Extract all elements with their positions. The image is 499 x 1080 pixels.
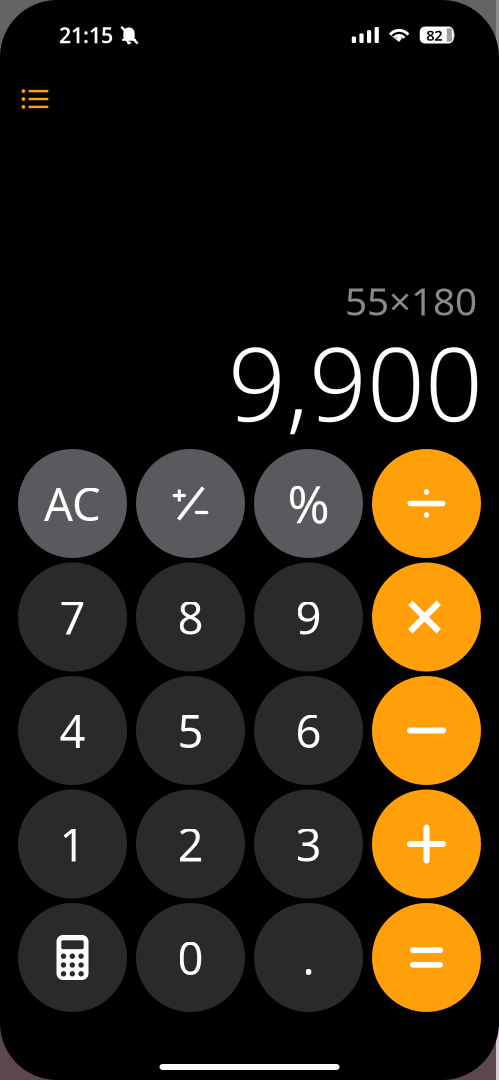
staticText: 6 [295, 700, 321, 761]
button[interactable] [136, 449, 245, 558]
button[interactable]: % [254, 449, 363, 558]
button[interactable] [372, 789, 481, 898]
staticText: 1 [59, 814, 85, 874]
staticText: % [287, 470, 329, 537]
staticText: 2 [177, 814, 203, 874]
button[interactable]: 0 [136, 903, 245, 1012]
staticText: 5 [177, 700, 203, 761]
staticText: 0 [177, 927, 203, 988]
button[interactable]: . [254, 903, 363, 1012]
button[interactable]: 8 [136, 562, 245, 671]
staticText: 21:15 [59, 21, 113, 49]
button[interactable]: 6 [254, 676, 363, 785]
button[interactable]: 5 [136, 676, 245, 785]
staticText: 3 [295, 814, 321, 874]
staticText: 82 [426, 25, 442, 45]
button[interactable]: 2 [136, 789, 245, 898]
button[interactable]: 7 [18, 562, 127, 671]
staticText: 4 [59, 700, 85, 761]
button[interactable]: 1 [18, 789, 127, 898]
staticText: 55×180 [345, 275, 477, 326]
button[interactable] [372, 562, 481, 671]
button[interactable] [18, 903, 127, 1012]
staticText: AC [44, 473, 101, 534]
staticText: 9,900 [228, 315, 483, 449]
button[interactable]: 9 [254, 562, 363, 671]
button[interactable]: History [13, 77, 57, 121]
button[interactable] [372, 449, 481, 558]
button[interactable]: 4 [18, 676, 127, 785]
staticText: 7 [59, 587, 85, 647]
button[interactable] [372, 676, 481, 785]
staticText: 9 [295, 587, 321, 647]
staticText: . [302, 927, 314, 988]
button[interactable]: 3 [254, 789, 363, 898]
staticText: 8 [177, 587, 203, 647]
button[interactable]: AC [18, 449, 127, 558]
button[interactable] [372, 903, 481, 1012]
